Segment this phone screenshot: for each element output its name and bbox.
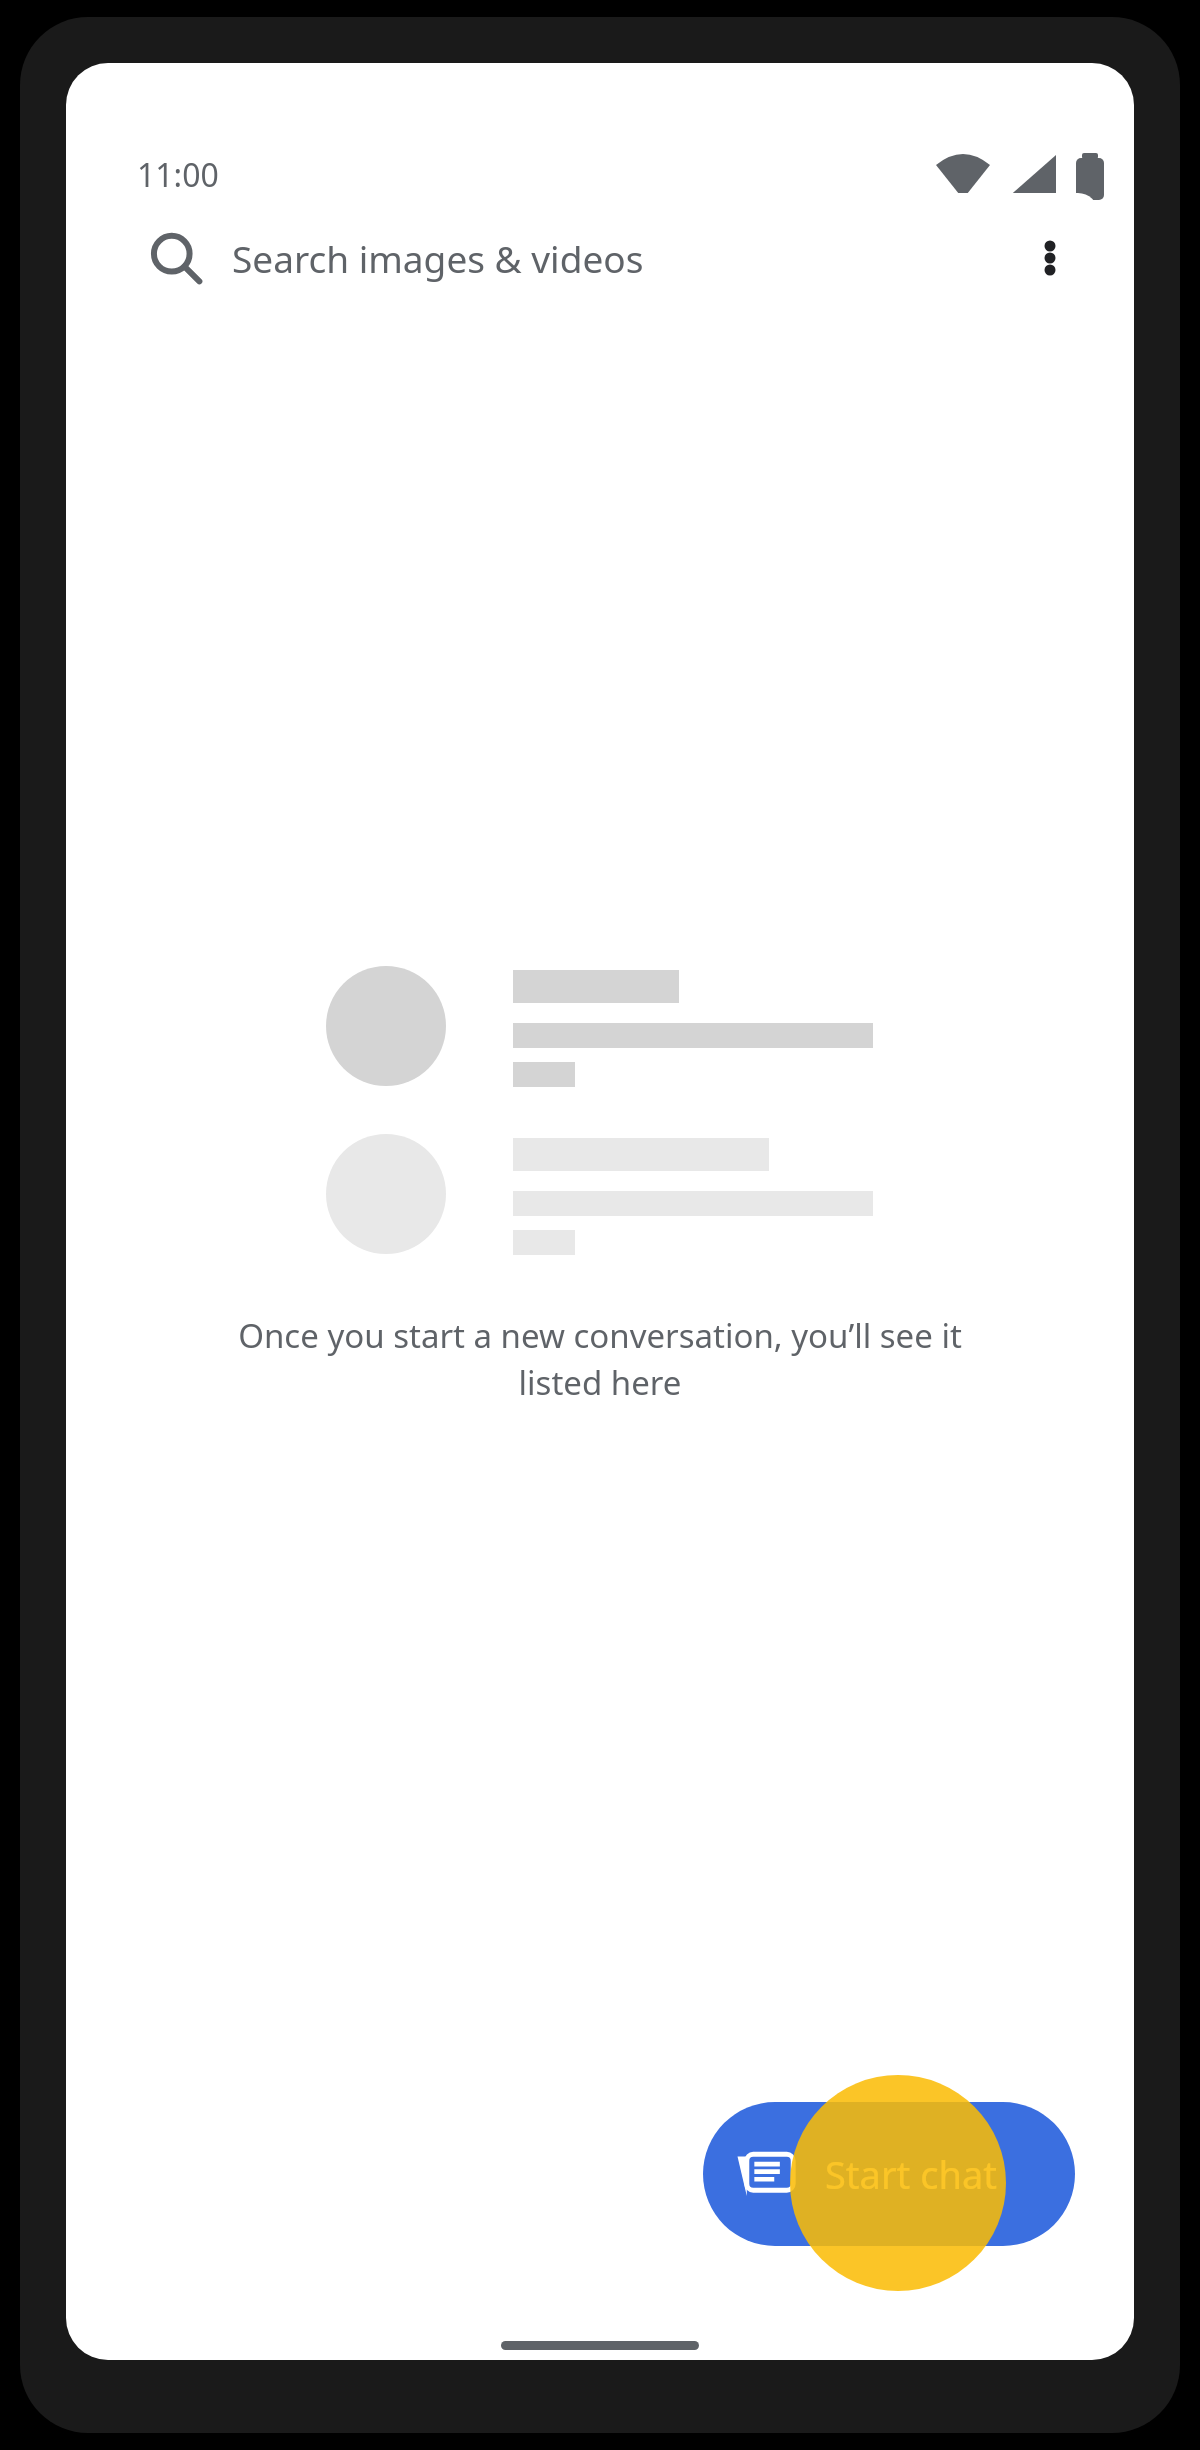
button[interactable]: Start chat	[703, 2102, 1075, 2246]
button[interactable]: Search images & videos	[102, 193, 1098, 323]
staticText: Search images & videos	[232, 233, 644, 283]
staticText: Once you start a new conversation, you’l…	[226, 1313, 974, 1405]
staticText: 11:00	[137, 153, 219, 197]
button[interactable]: More options	[1002, 210, 1098, 306]
staticText: Start chat	[825, 2148, 997, 2200]
